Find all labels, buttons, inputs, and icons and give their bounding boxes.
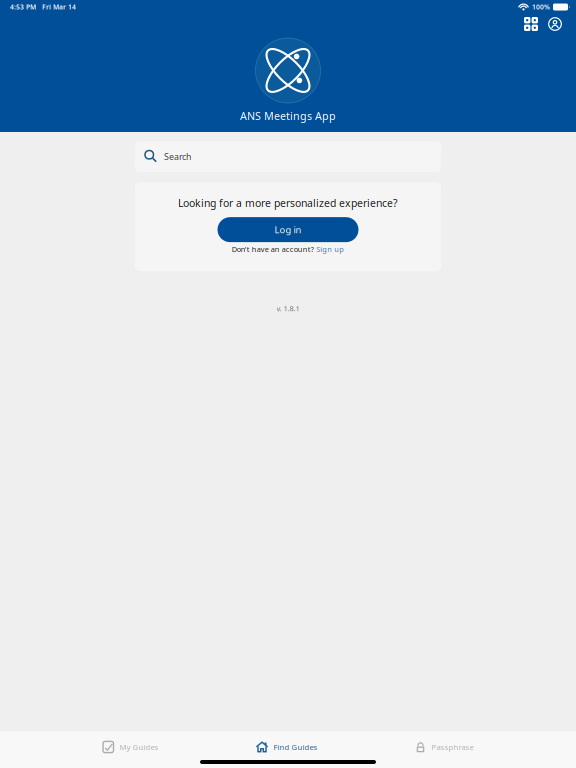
button[interactable]: My Guides <box>102 734 158 760</box>
staticText: Log in <box>274 223 301 236</box>
staticText: Search <box>164 150 191 162</box>
staticText: ANS Meetings App <box>240 108 336 123</box>
staticText: 100% <box>532 3 550 11</box>
staticText: Looking for a more personalized experien… <box>178 196 398 210</box>
staticText: 4:53 PM Fri Mar 14 <box>10 3 76 11</box>
button[interactable]: Log in <box>217 217 358 242</box>
button[interactable]: Account <box>543 14 567 34</box>
button[interactable]: Scan QR code <box>519 14 543 34</box>
staticText: My Guides <box>119 742 158 752</box>
staticText: Find Guides <box>273 742 317 752</box>
staticText: v. 1.8.1 <box>276 303 299 313</box>
staticText: Sign up <box>316 244 344 254</box>
button[interactable]: Search <box>135 141 441 172</box>
staticText: Don't have an account? <box>232 244 314 254</box>
button[interactable]: Find Guides <box>255 734 317 760</box>
button[interactable]: Passphrase <box>414 734 473 760</box>
staticText: Passphrase <box>431 742 473 752</box>
